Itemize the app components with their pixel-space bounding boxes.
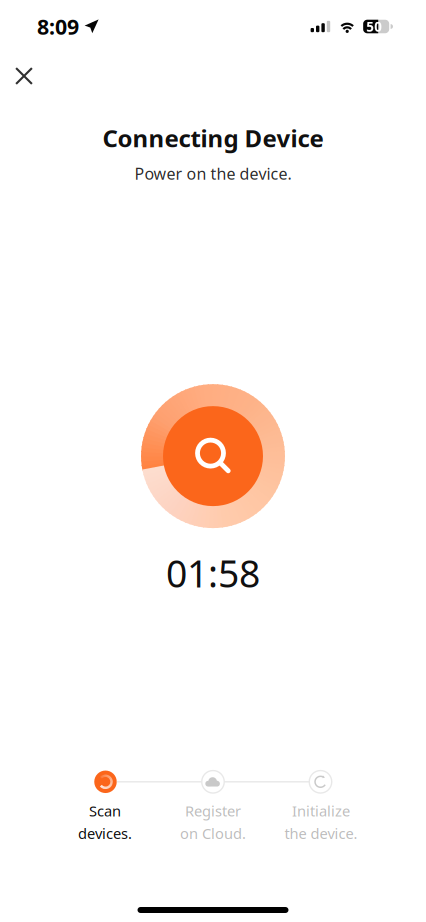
staticText: the device. [284, 823, 357, 843]
staticText: 8:09 [37, 12, 79, 41]
staticText: Connecting Device [102, 122, 323, 154]
staticText: Power on the device. [134, 163, 291, 184]
staticText: 50 [366, 18, 382, 35]
staticText: Register [185, 801, 241, 820]
staticText: devices. [78, 823, 132, 843]
staticText: on Cloud. [180, 823, 246, 843]
staticText: 01:58 [166, 548, 260, 598]
staticText: Initialize [292, 801, 350, 820]
staticText: Scan [89, 801, 121, 820]
button[interactable]: Close [0, 53, 46, 93]
